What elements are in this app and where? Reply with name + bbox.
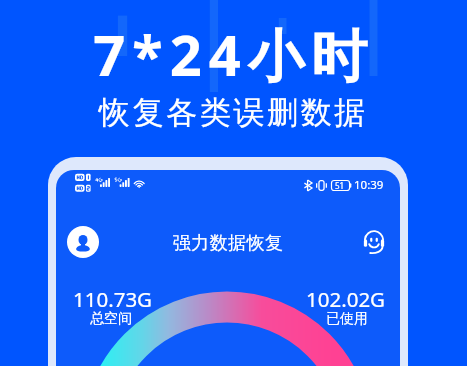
- staticText: 已使用: [326, 310, 368, 328]
- button[interactable]: Customer support: [362, 227, 387, 252]
- staticText: 10:39: [354, 177, 384, 193]
- staticText: 102.02G: [306, 285, 386, 313]
- staticText: 恢复各类误删数据: [0, 93, 467, 132]
- staticText: 总空间: [90, 310, 132, 328]
- staticText: 110.73G: [73, 285, 153, 313]
- button[interactable]: Profile: [67, 226, 99, 258]
- staticText: 7*24小时: [0, 16, 467, 92]
- button[interactable]: 强力数据恢复: [56, 232, 400, 255]
- staticText: 51: [335, 180, 345, 191]
